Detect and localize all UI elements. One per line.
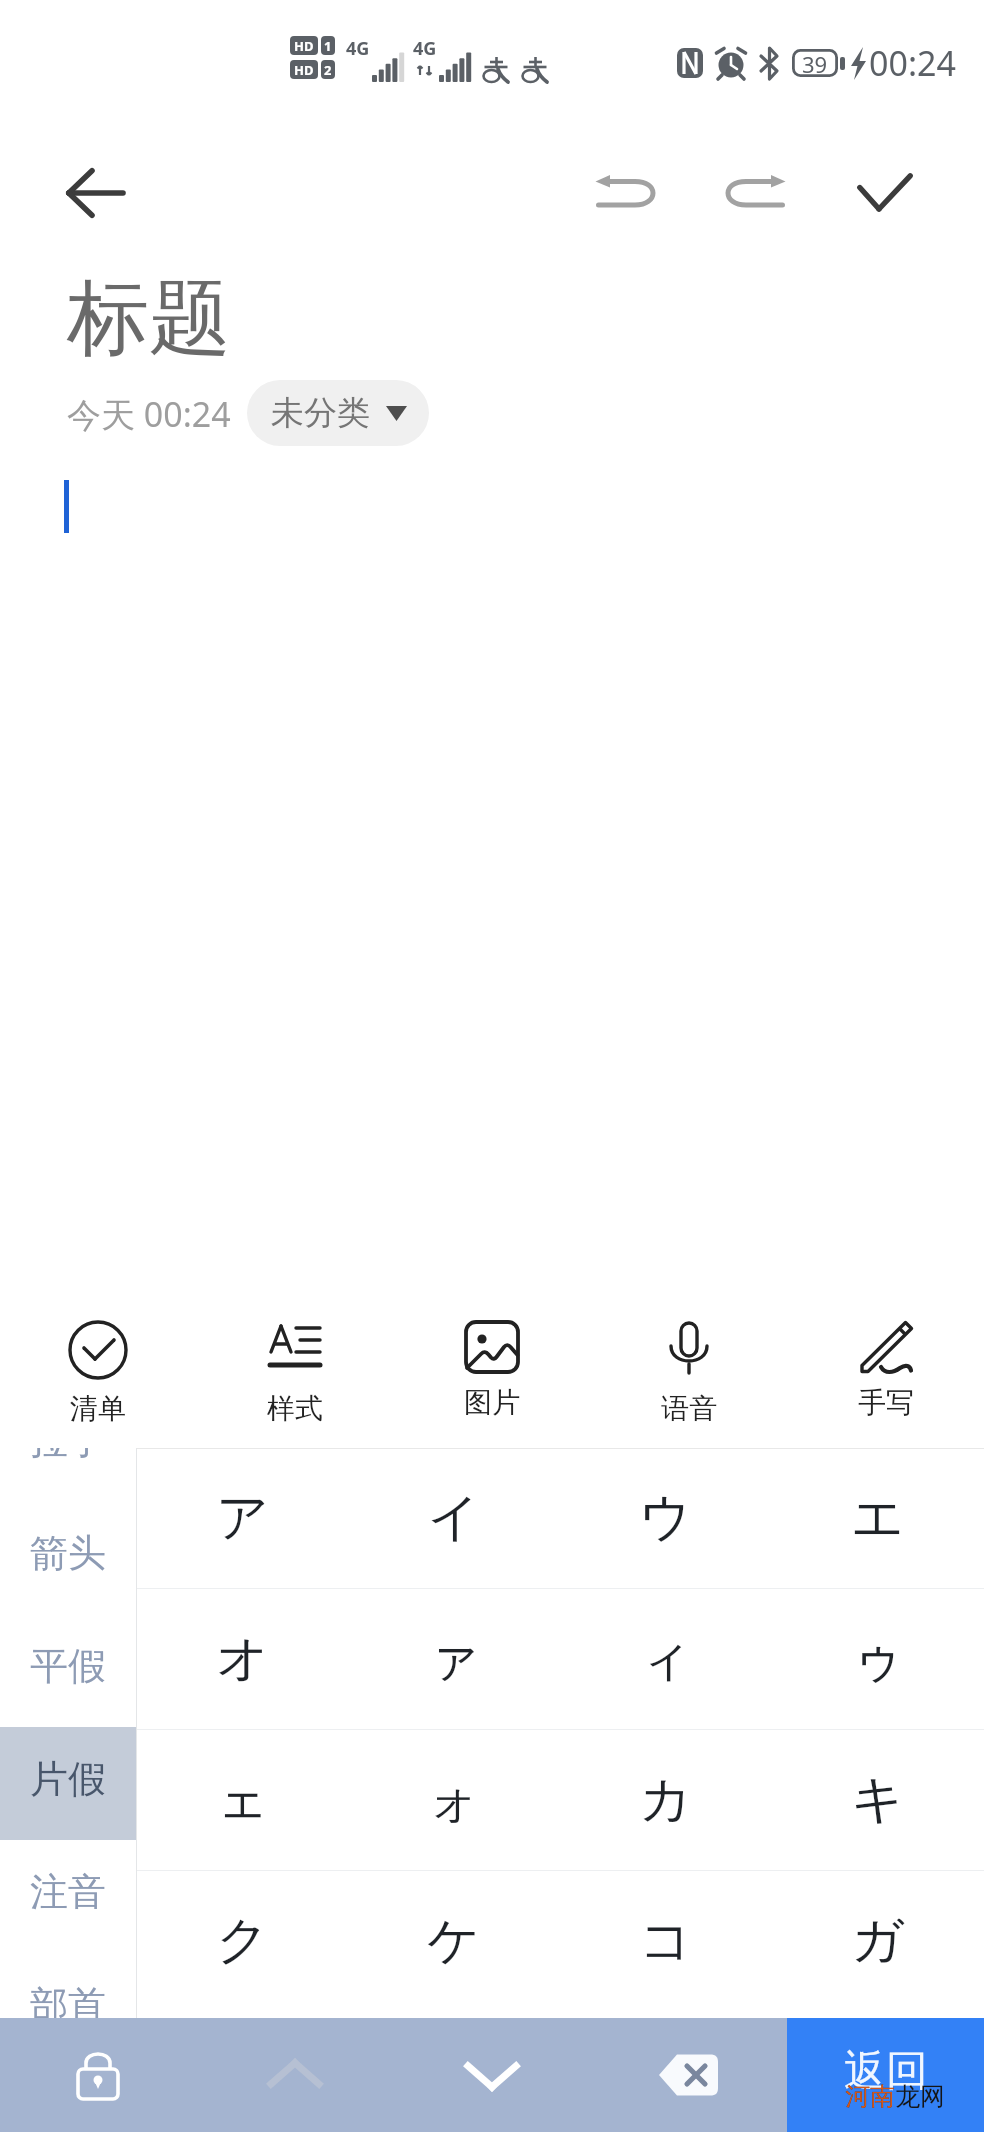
staticText: ォ [427,1767,481,1833]
button[interactable]: 语音 [590,1290,787,1448]
staticText: 标题 [67,267,231,370]
button[interactable]: カ [560,1730,772,1870]
button[interactable]: Back [48,145,144,241]
button[interactable]: Redo [707,145,803,241]
button[interactable]: 样式 [196,1290,393,1448]
staticText: 样式 [267,1391,323,1426]
button[interactable]: 部首 [0,1953,136,2018]
button[interactable]: Next [393,2018,590,2132]
button[interactable]: エ [772,1448,984,1588]
button[interactable]: 手写 [787,1290,984,1448]
staticText: 语音 [661,1391,717,1426]
staticText: ガ [851,1908,905,1974]
button[interactable]: ォ [348,1730,560,1870]
button[interactable]: ク [137,1871,348,2011]
staticText: コ [639,1908,693,1974]
button[interactable]: 平假 [0,1614,136,1727]
staticText: 今天 00:24 [67,391,231,437]
staticText: 00:24 [869,40,956,86]
staticText: 4G [346,36,370,61]
staticText: 2 [324,61,332,79]
button[interactable]: Done [837,145,933,241]
staticText: ア [216,1485,270,1551]
staticText: 返回 [844,2045,928,2098]
staticText: ケ [427,1908,481,1974]
staticText: 注音 [30,1868,106,1916]
staticText: エ [851,1485,905,1551]
button[interactable]: Undo [578,145,674,241]
staticText: ウ [639,1485,693,1551]
button[interactable]: ェ [137,1730,348,1870]
staticText: 拉丁 [30,1448,106,1464]
staticText: ク [216,1908,270,1974]
button[interactable]: キ [772,1730,984,1870]
staticText: HD [294,61,314,79]
staticText: 1 [324,37,332,55]
button[interactable]: Delete [590,2018,787,2132]
staticText: ィ [639,1626,693,1692]
staticText: 未分类 [271,392,370,434]
button[interactable]: 未分类 [247,380,429,446]
button[interactable]: ウ [560,1448,772,1588]
staticText: 图片 [464,1385,520,1420]
staticText: 部首 [30,1981,106,2018]
staticText: カ [639,1767,693,1833]
staticText: キ [851,1767,905,1833]
staticText: イ [427,1485,481,1551]
button[interactable]: ケ [348,1871,560,2011]
staticText: ァ [427,1626,481,1692]
staticText: 河南 [845,2081,895,2112]
staticText: ゥ [851,1626,905,1692]
button[interactable]: 图片 [393,1290,590,1448]
staticText: 39 [802,49,828,77]
button[interactable]: 返回 [787,2018,984,2132]
button[interactable]: オ [137,1589,348,1729]
button[interactable]: ゥ [772,1589,984,1729]
staticText: オ [216,1626,270,1692]
button[interactable]: 清单 [0,1290,196,1448]
button[interactable]: 拉丁 [0,1448,136,1501]
staticText: ェ [216,1767,270,1833]
button[interactable]: ィ [560,1589,772,1729]
staticText: 箭头 [30,1529,106,1577]
staticText: 平假 [30,1642,106,1690]
button[interactable]: ガ [772,1871,984,2011]
staticText: 片假 [30,1755,106,1803]
button[interactable]: 片假 [0,1727,136,1840]
button[interactable]: 箭头 [0,1501,136,1614]
button[interactable]: ァ [348,1589,560,1729]
staticText: 清单 [70,1391,126,1426]
button[interactable]: 注音 [0,1840,136,1953]
button[interactable]: コ [560,1871,772,2011]
button[interactable] [0,466,984,1290]
button[interactable]: ア [137,1448,348,1588]
staticText: 手写 [858,1385,914,1420]
staticText: HD [294,37,314,55]
button[interactable]: イ [348,1448,560,1588]
staticText: 河南龙网 [845,2081,945,2112]
staticText: 4G [413,36,437,61]
button[interactable]: Lock [0,2018,196,2132]
